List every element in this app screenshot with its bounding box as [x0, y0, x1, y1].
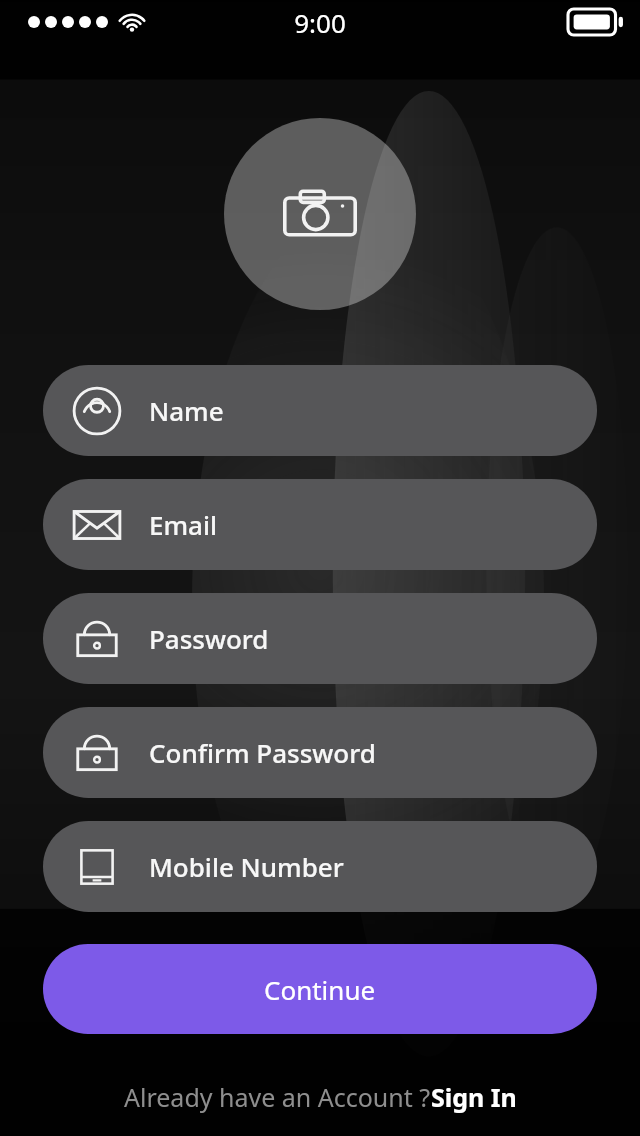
- button[interactable]: Mobile Number: [43, 821, 597, 912]
- button[interactable]: Continue: [43, 944, 597, 1034]
- staticText: Mobile Number: [149, 849, 344, 884]
- staticText: 9:00: [294, 5, 346, 40]
- button[interactable]: Add profile photo: [224, 118, 416, 310]
- staticText: Already have an Account ?: [124, 1080, 431, 1114]
- staticText: Confirm Password: [149, 735, 376, 770]
- button[interactable]: Confirm Password: [43, 707, 597, 798]
- staticText: Password: [149, 621, 269, 656]
- button[interactable]: Sign In: [431, 1080, 517, 1114]
- staticText: Continue: [264, 972, 376, 1007]
- staticText: Name: [149, 393, 224, 428]
- button[interactable]: Name: [43, 365, 597, 456]
- button[interactable]: Email: [43, 479, 597, 570]
- staticText: Email: [149, 507, 218, 542]
- button[interactable]: Password: [43, 593, 597, 684]
- staticText: Sign In: [431, 1080, 517, 1114]
